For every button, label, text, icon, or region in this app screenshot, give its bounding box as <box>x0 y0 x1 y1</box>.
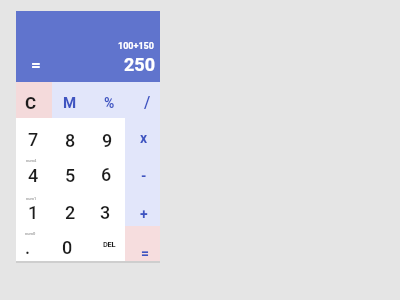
button[interactable] <box>16 82 52 118</box>
staticText: 100+150 <box>118 41 154 52</box>
staticText: x <box>140 130 148 146</box>
button[interactable] <box>125 190 160 226</box>
button[interactable] <box>88 118 125 154</box>
staticText: num4 <box>26 158 37 163</box>
staticText: 4 <box>28 165 39 186</box>
staticText: num0 <box>25 231 36 236</box>
button[interactable] <box>16 190 52 226</box>
staticText: 3 <box>100 202 111 223</box>
button[interactable] <box>125 154 160 190</box>
button[interactable] <box>52 226 88 261</box>
button[interactable] <box>52 82 88 118</box>
staticText: - <box>141 168 147 184</box>
staticText: 6 <box>101 164 112 185</box>
staticText: M <box>63 94 77 112</box>
button[interactable] <box>88 82 125 118</box>
button[interactable] <box>125 226 160 261</box>
staticText: . <box>25 237 31 258</box>
staticText: 5 <box>65 165 76 186</box>
button[interactable] <box>88 190 125 226</box>
staticText: 1 <box>28 202 39 223</box>
staticText: 7 <box>28 129 39 150</box>
staticText: 9 <box>102 130 113 151</box>
staticText: 250 <box>124 54 155 75</box>
button[interactable] <box>88 154 125 190</box>
staticText: 2 <box>65 202 76 223</box>
staticText: = <box>141 245 150 261</box>
staticText: % <box>104 95 115 111</box>
button[interactable] <box>16 154 52 190</box>
button[interactable] <box>88 226 125 261</box>
staticText: / <box>144 93 151 112</box>
staticText: 8 <box>65 130 76 151</box>
staticText: C <box>25 93 37 113</box>
button[interactable] <box>52 154 88 190</box>
staticText: DEL <box>103 240 116 249</box>
button[interactable] <box>52 190 88 226</box>
staticText: 0 <box>62 237 73 258</box>
staticText: + <box>140 206 148 222</box>
button[interactable] <box>125 118 160 154</box>
staticText: = <box>31 55 41 75</box>
staticText: num1 <box>26 196 37 201</box>
button[interactable] <box>16 226 52 261</box>
button[interactable] <box>125 82 160 118</box>
button[interactable] <box>52 118 88 154</box>
button[interactable] <box>16 118 52 154</box>
